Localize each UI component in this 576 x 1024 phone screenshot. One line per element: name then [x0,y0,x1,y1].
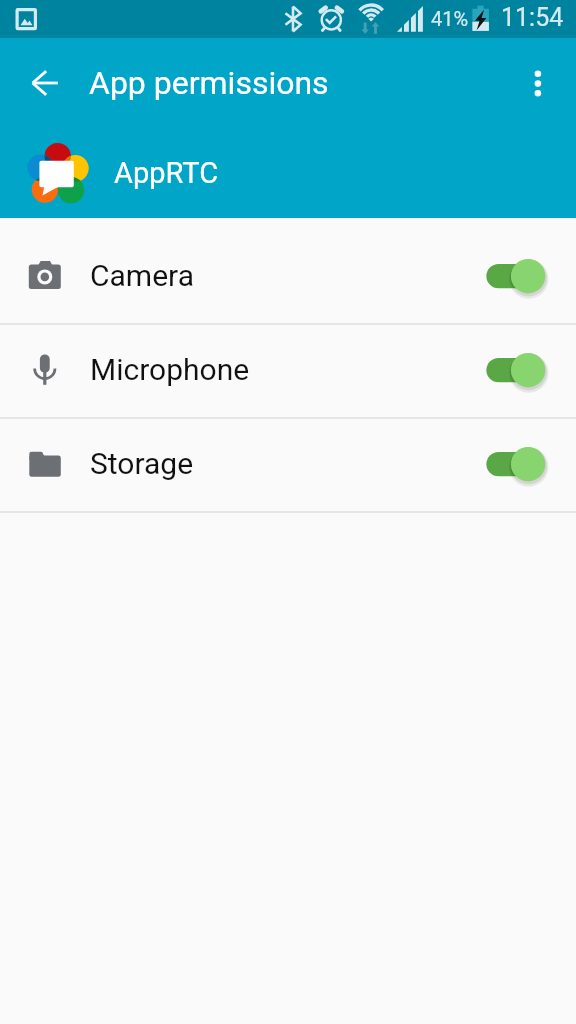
button[interactable]: Navigate up [17,55,74,112]
button[interactable]: Microphone permission, allowed [480,347,552,393]
button[interactable]: Storage [0,419,576,513]
staticText: 41% [431,7,469,30]
staticText: Camera [90,258,194,293]
button[interactable]: Storage permission, allowed [480,441,552,487]
button[interactable]: Camera permission, allowed [480,253,552,299]
staticText: Microphone [90,352,250,387]
button[interactable]: Microphone [0,325,576,419]
staticText: 11:54 [501,3,564,32]
staticText: App permissions [89,64,329,102]
staticText: Storage [90,446,194,481]
staticText: AppRTC [114,156,219,190]
button[interactable]: More options [509,55,566,112]
button[interactable]: Camera [0,231,576,325]
